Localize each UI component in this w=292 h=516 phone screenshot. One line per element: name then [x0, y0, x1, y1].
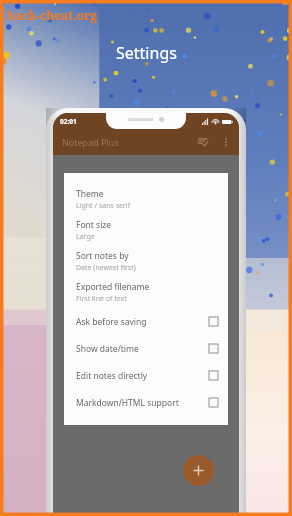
- button[interactable]: Font size: [76, 215, 218, 246]
- button[interactable]: Edit notes directly: [76, 362, 218, 389]
- button[interactable]: Sort notes by: [76, 246, 218, 277]
- button[interactable]: Markdown/HTML support: [76, 389, 218, 416]
- button[interactable]: Theme: [76, 184, 218, 215]
- staticText: 02:01: [60, 117, 77, 126]
- button[interactable]: Ask before saving: [76, 308, 218, 335]
- staticText: Ask before saving: [76, 316, 147, 328]
- staticText: Font size: [76, 219, 112, 231]
- staticText: Large: [76, 232, 95, 242]
- staticText: Edit notes directly: [76, 370, 148, 382]
- button[interactable]: New note: [183, 455, 214, 486]
- staticText: Show date/time: [76, 343, 139, 355]
- staticText: Light / sans serif: [76, 201, 131, 211]
- staticText: Date (newest first): [76, 263, 136, 273]
- staticText: Markdown/HTML support: [76, 397, 179, 409]
- staticText: Notepad Plus: [62, 136, 119, 148]
- button[interactable]: More options: [219, 135, 233, 149]
- staticText: Sort notes by: [76, 250, 129, 262]
- button[interactable]: Notepad Plus: [53, 129, 239, 155]
- staticText: Theme: [76, 188, 104, 200]
- button[interactable]: Sort notes: [196, 135, 210, 149]
- staticText: Settings: [116, 42, 177, 64]
- staticText: Exported filename: [76, 281, 150, 293]
- staticText: First line of text: [76, 294, 127, 304]
- button[interactable]: Show date/time: [76, 335, 218, 362]
- staticText: hack-cheat.org: [7, 7, 98, 23]
- button[interactable]: Exported filename: [76, 277, 218, 308]
